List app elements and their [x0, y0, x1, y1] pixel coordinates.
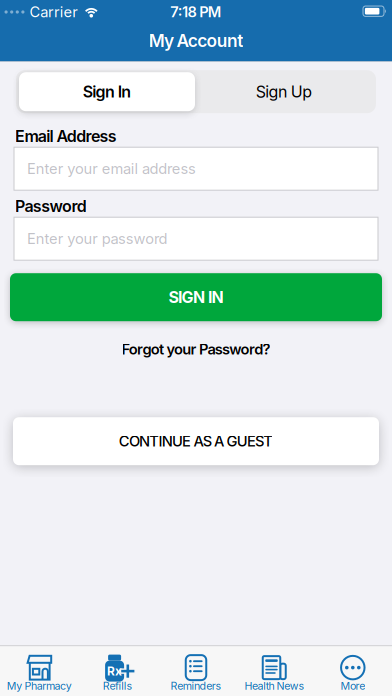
- staticText: Enter your email address: [27, 160, 196, 177]
- staticText: Enter your password: [27, 230, 168, 247]
- staticText: Rx: [107, 664, 122, 678]
- staticText: Refills: [103, 680, 132, 692]
- button[interactable]: Forgot your Password?: [121, 341, 270, 357]
- staticText: Password: [15, 197, 87, 216]
- staticText: 7:18 PM: [170, 3, 222, 21]
- button[interactable]: CONTINUE AS A GUEST: [13, 417, 379, 465]
- staticText: Forgot your Password?: [121, 340, 270, 358]
- button[interactable]: My Pharmacy: [0, 646, 78, 696]
- staticText: Sign In: [83, 82, 131, 101]
- button[interactable]: SIGN IN: [10, 273, 382, 321]
- staticText: Reminders: [171, 680, 221, 692]
- button[interactable]: Rx: [78, 646, 157, 696]
- button[interactable]: Sign Up: [195, 72, 373, 111]
- button[interactable]: More: [314, 646, 392, 696]
- staticText: More: [340, 680, 365, 692]
- button[interactable]: Reminders: [157, 646, 235, 696]
- staticText: Sign Up: [256, 82, 312, 101]
- staticText: Carrier: [29, 3, 78, 21]
- staticText: My Account: [149, 31, 243, 51]
- staticText: My Pharmacy: [7, 680, 72, 692]
- staticText: CONTINUE AS A GUEST: [119, 432, 273, 450]
- staticText: Health News: [244, 680, 304, 692]
- staticText: Email Address: [15, 127, 117, 146]
- button[interactable]: Sign In: [19, 72, 195, 111]
- button[interactable]: Health News: [235, 646, 314, 696]
- staticText: SIGN IN: [168, 288, 223, 307]
